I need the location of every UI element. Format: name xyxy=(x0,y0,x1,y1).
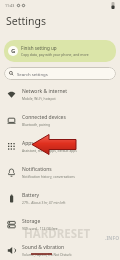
button[interactable]: Network & internet xyxy=(0,81,120,107)
staticText: Sound & vibration xyxy=(22,244,65,251)
button[interactable]: G xyxy=(4,40,116,62)
staticText: Bluetooth, pairing xyxy=(22,122,51,126)
staticText: Volume, haptics, Do Not Disturb xyxy=(22,252,72,256)
staticText: Copy data, pay with your phone, and more xyxy=(21,52,89,57)
staticText: Notification history, conversations xyxy=(22,174,75,178)
button[interactable]: Search settings xyxy=(4,67,116,80)
staticText: Storage xyxy=(22,218,41,225)
button[interactable]: Apps xyxy=(0,133,120,159)
button[interactable]: Notifications xyxy=(0,159,120,185)
button[interactable]: Storage xyxy=(0,211,120,237)
staticText: .INFO xyxy=(105,235,120,242)
staticText: Battery xyxy=(22,192,40,199)
staticText: Mobile, Wi-Fi, hotspot xyxy=(22,96,56,100)
button[interactable]: Sound & vibration xyxy=(0,237,120,260)
staticText: 90% used - 113 GB free xyxy=(22,226,58,230)
button[interactable]: Battery xyxy=(0,185,120,211)
staticText: Settings xyxy=(6,14,46,28)
button[interactable]: Connected devices xyxy=(0,107,120,133)
staticText: Network & internet xyxy=(22,88,68,95)
staticText: HARDRESET xyxy=(24,226,91,242)
staticText: Apps xyxy=(22,140,34,147)
staticText: Search settings xyxy=(17,71,48,77)
staticText: Connected devices xyxy=(22,114,66,121)
staticText: 27% - About 3 hr, 47 min left xyxy=(22,200,66,204)
staticText: Assistant, recent apps, default apps xyxy=(22,148,77,152)
staticText: G xyxy=(11,47,16,55)
staticText: 11:43 xyxy=(5,3,15,8)
staticText: Finish setting up xyxy=(21,45,57,51)
staticText: Notifications xyxy=(22,166,52,173)
